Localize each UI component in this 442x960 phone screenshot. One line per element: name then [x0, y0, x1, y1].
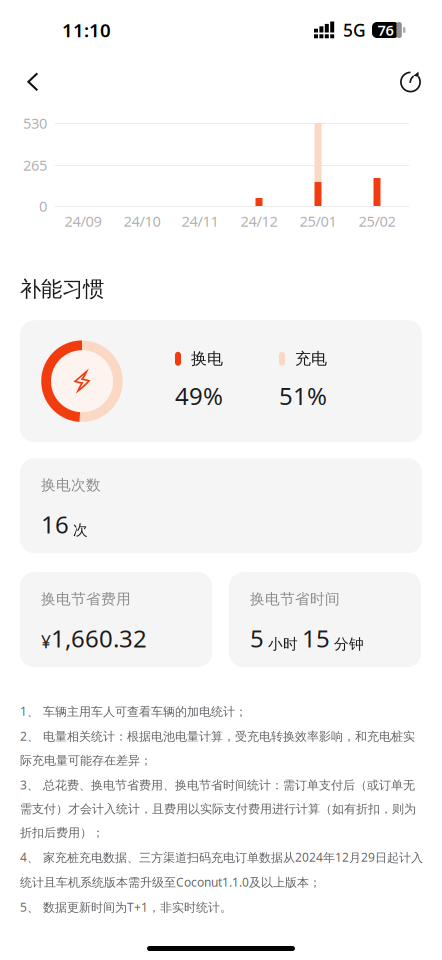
staticText: 4、 家充桩充电数据、三方渠道扫码充电订单数据从2024年12月29日起计入统计…	[20, 849, 423, 890]
staticText: 换电次数	[41, 476, 101, 494]
staticText: 25/02	[358, 211, 395, 231]
staticText: 49%	[175, 380, 223, 412]
staticText: 16	[41, 508, 69, 540]
staticText: 76	[377, 20, 393, 40]
staticText: 1,660.32	[51, 622, 147, 654]
staticText: 51%	[279, 380, 327, 412]
staticText: 5G	[343, 18, 366, 41]
staticText: 15	[302, 622, 330, 654]
button[interactable]: Back	[11, 60, 55, 104]
staticText: 充电	[295, 349, 327, 369]
staticText: 11:10	[62, 18, 111, 42]
button[interactable]: Share	[389, 60, 433, 104]
staticText: 换电	[191, 349, 223, 369]
staticText: 5	[250, 622, 264, 654]
staticText: 24/12	[240, 211, 277, 231]
staticText: 换电节省时间	[250, 590, 340, 608]
staticText: 2、 电量相关统计：根据电池电量计算，受充电转换效率影响，和充电桩实际充电量可能…	[20, 728, 415, 768]
staticText: 次	[73, 521, 88, 539]
staticText: 补能习惯	[20, 276, 104, 302]
staticText: 24/11	[181, 211, 218, 231]
staticText: 0	[39, 196, 47, 216]
staticText: 5、 数据更新时间为T+1，非实时统计。	[20, 899, 232, 915]
staticText: 分钟	[334, 635, 364, 653]
staticText: 530	[23, 113, 47, 133]
staticText: 265	[23, 155, 47, 175]
staticText: 25/01	[299, 211, 336, 231]
staticText: 3、 总花费、换电节省费用、换电节省时间统计：需订单支付后（或订单无需支付）才会…	[20, 777, 416, 840]
staticText: 换电节省费用	[41, 590, 131, 608]
staticText: 24/09	[64, 211, 101, 231]
staticText: ¥	[41, 630, 51, 653]
staticText: 24/10	[123, 211, 160, 231]
staticText: 1、 车辆主用车人可查看车辆的加电统计；	[20, 703, 247, 719]
staticText: 小时	[268, 635, 298, 653]
